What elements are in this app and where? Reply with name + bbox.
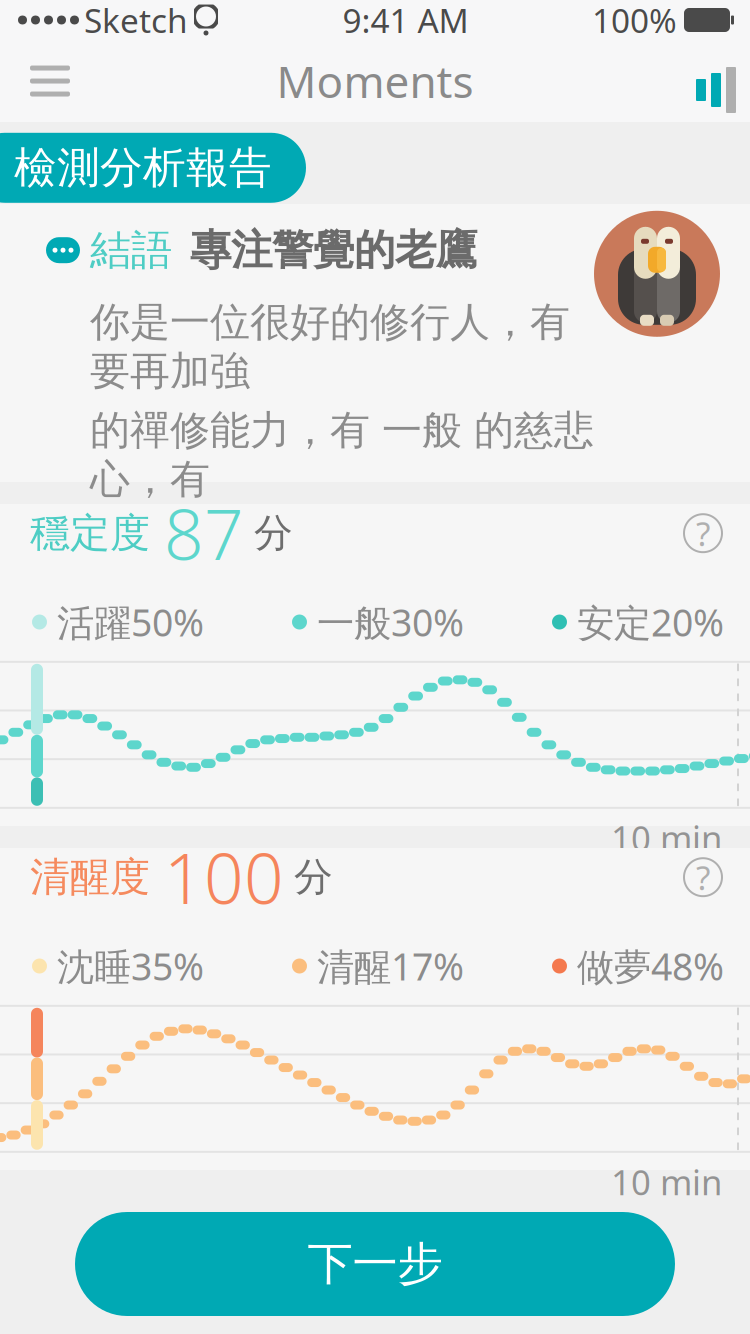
staticText: Sketch (84, 0, 188, 42)
button[interactable]: Help (676, 506, 730, 560)
staticText: 清醒17% (317, 941, 464, 991)
staticText: 一般30% (317, 597, 464, 647)
staticText: 你是一位很好的修行人，有要再加強 (90, 298, 570, 396)
staticText: 分 (254, 509, 293, 557)
staticText: ? (696, 511, 710, 555)
staticText: 沈睡35% (57, 941, 204, 991)
staticText: 下一步 (307, 1236, 442, 1292)
staticText: 活躍50% (57, 597, 204, 647)
staticText: 10 min (611, 815, 722, 861)
staticText: 禪和子的潛力。 (90, 514, 370, 563)
staticText: 87 (164, 487, 244, 579)
staticText: Moments (276, 52, 473, 110)
staticText: 10 min (611, 1159, 722, 1205)
staticText: 清醒度 (30, 853, 150, 902)
button[interactable]: 下一步 (75, 1212, 675, 1316)
staticText: 9:41 AM (342, 0, 468, 42)
staticText: 100% (592, 0, 677, 42)
button[interactable]: Menu (14, 49, 86, 113)
staticText: 專注警覺的老鷹 (190, 225, 477, 276)
staticText: 的禪修能力，有 一般 的慈悲心，有 (90, 406, 594, 504)
staticText: 100 (164, 831, 284, 923)
staticText: 分 (294, 853, 333, 901)
staticText: 結語 (90, 225, 172, 276)
staticText: ? (696, 855, 710, 899)
staticText: 穩定度 (30, 509, 150, 558)
staticText: 檢測分析報告 (14, 142, 272, 194)
staticText: 做夢48% (577, 941, 724, 991)
button[interactable]: Help (676, 850, 730, 904)
staticText: 安定20% (577, 597, 724, 647)
button[interactable]: Statistics (664, 49, 736, 113)
